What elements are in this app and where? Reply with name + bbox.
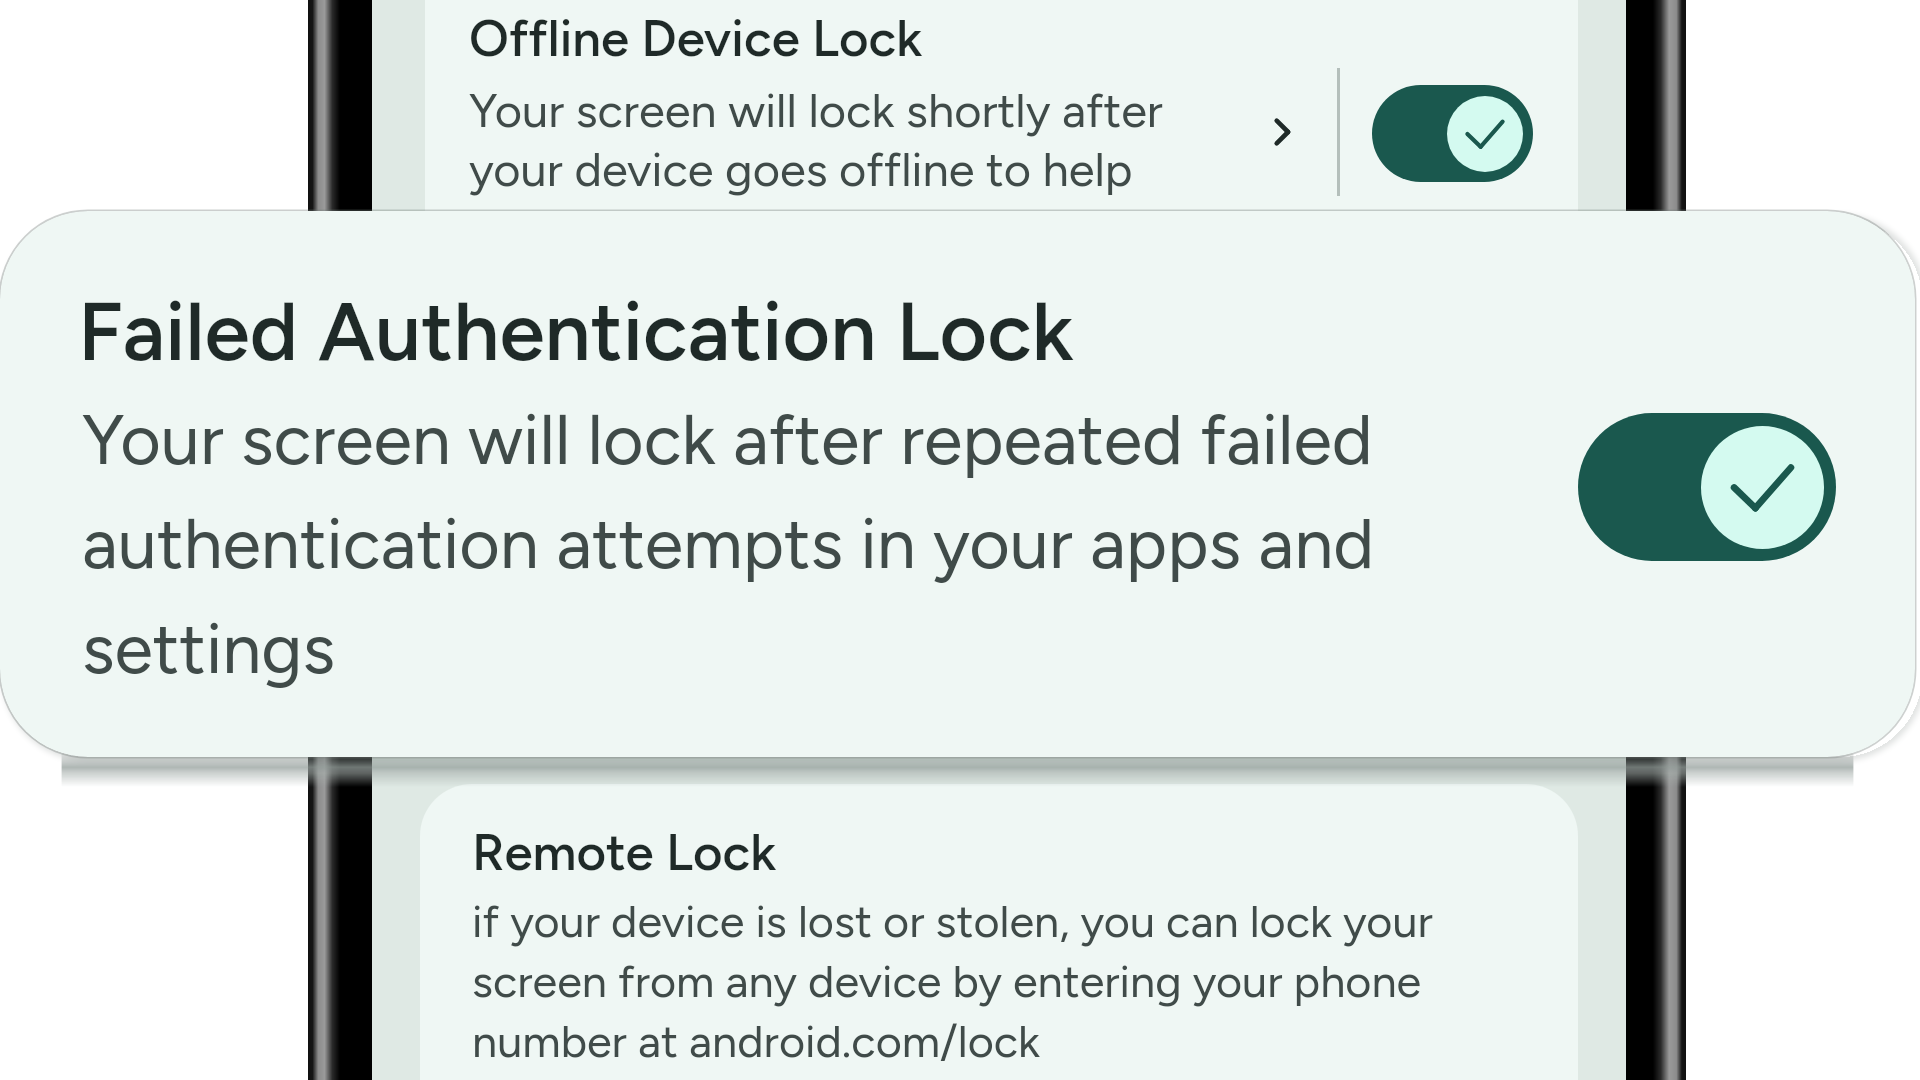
button[interactable]: Failed Authentication Lock <box>0 211 1915 757</box>
staticText: if your device is lost or stolen, you ca… <box>472 894 1433 1068</box>
button[interactable]: Failed Authentication Lock toggle <box>1578 413 1836 561</box>
staticText: Remote Lock <box>472 822 777 883</box>
staticText: Failed Authentication Lock <box>78 282 1074 380</box>
staticText: Your screen will lock after repeated fai… <box>82 397 1375 691</box>
button[interactable]: Open Offline Device Lock <box>1242 92 1322 172</box>
staticText: Your screen will lock shortly after your… <box>469 82 1163 197</box>
button[interactable]: Offline Device Lock toggle <box>1372 85 1533 182</box>
button[interactable]: Offline Device Lock <box>425 0 1578 290</box>
button[interactable]: Remote Lock <box>420 784 1578 1080</box>
staticText: Offline Device Lock <box>469 8 923 69</box>
